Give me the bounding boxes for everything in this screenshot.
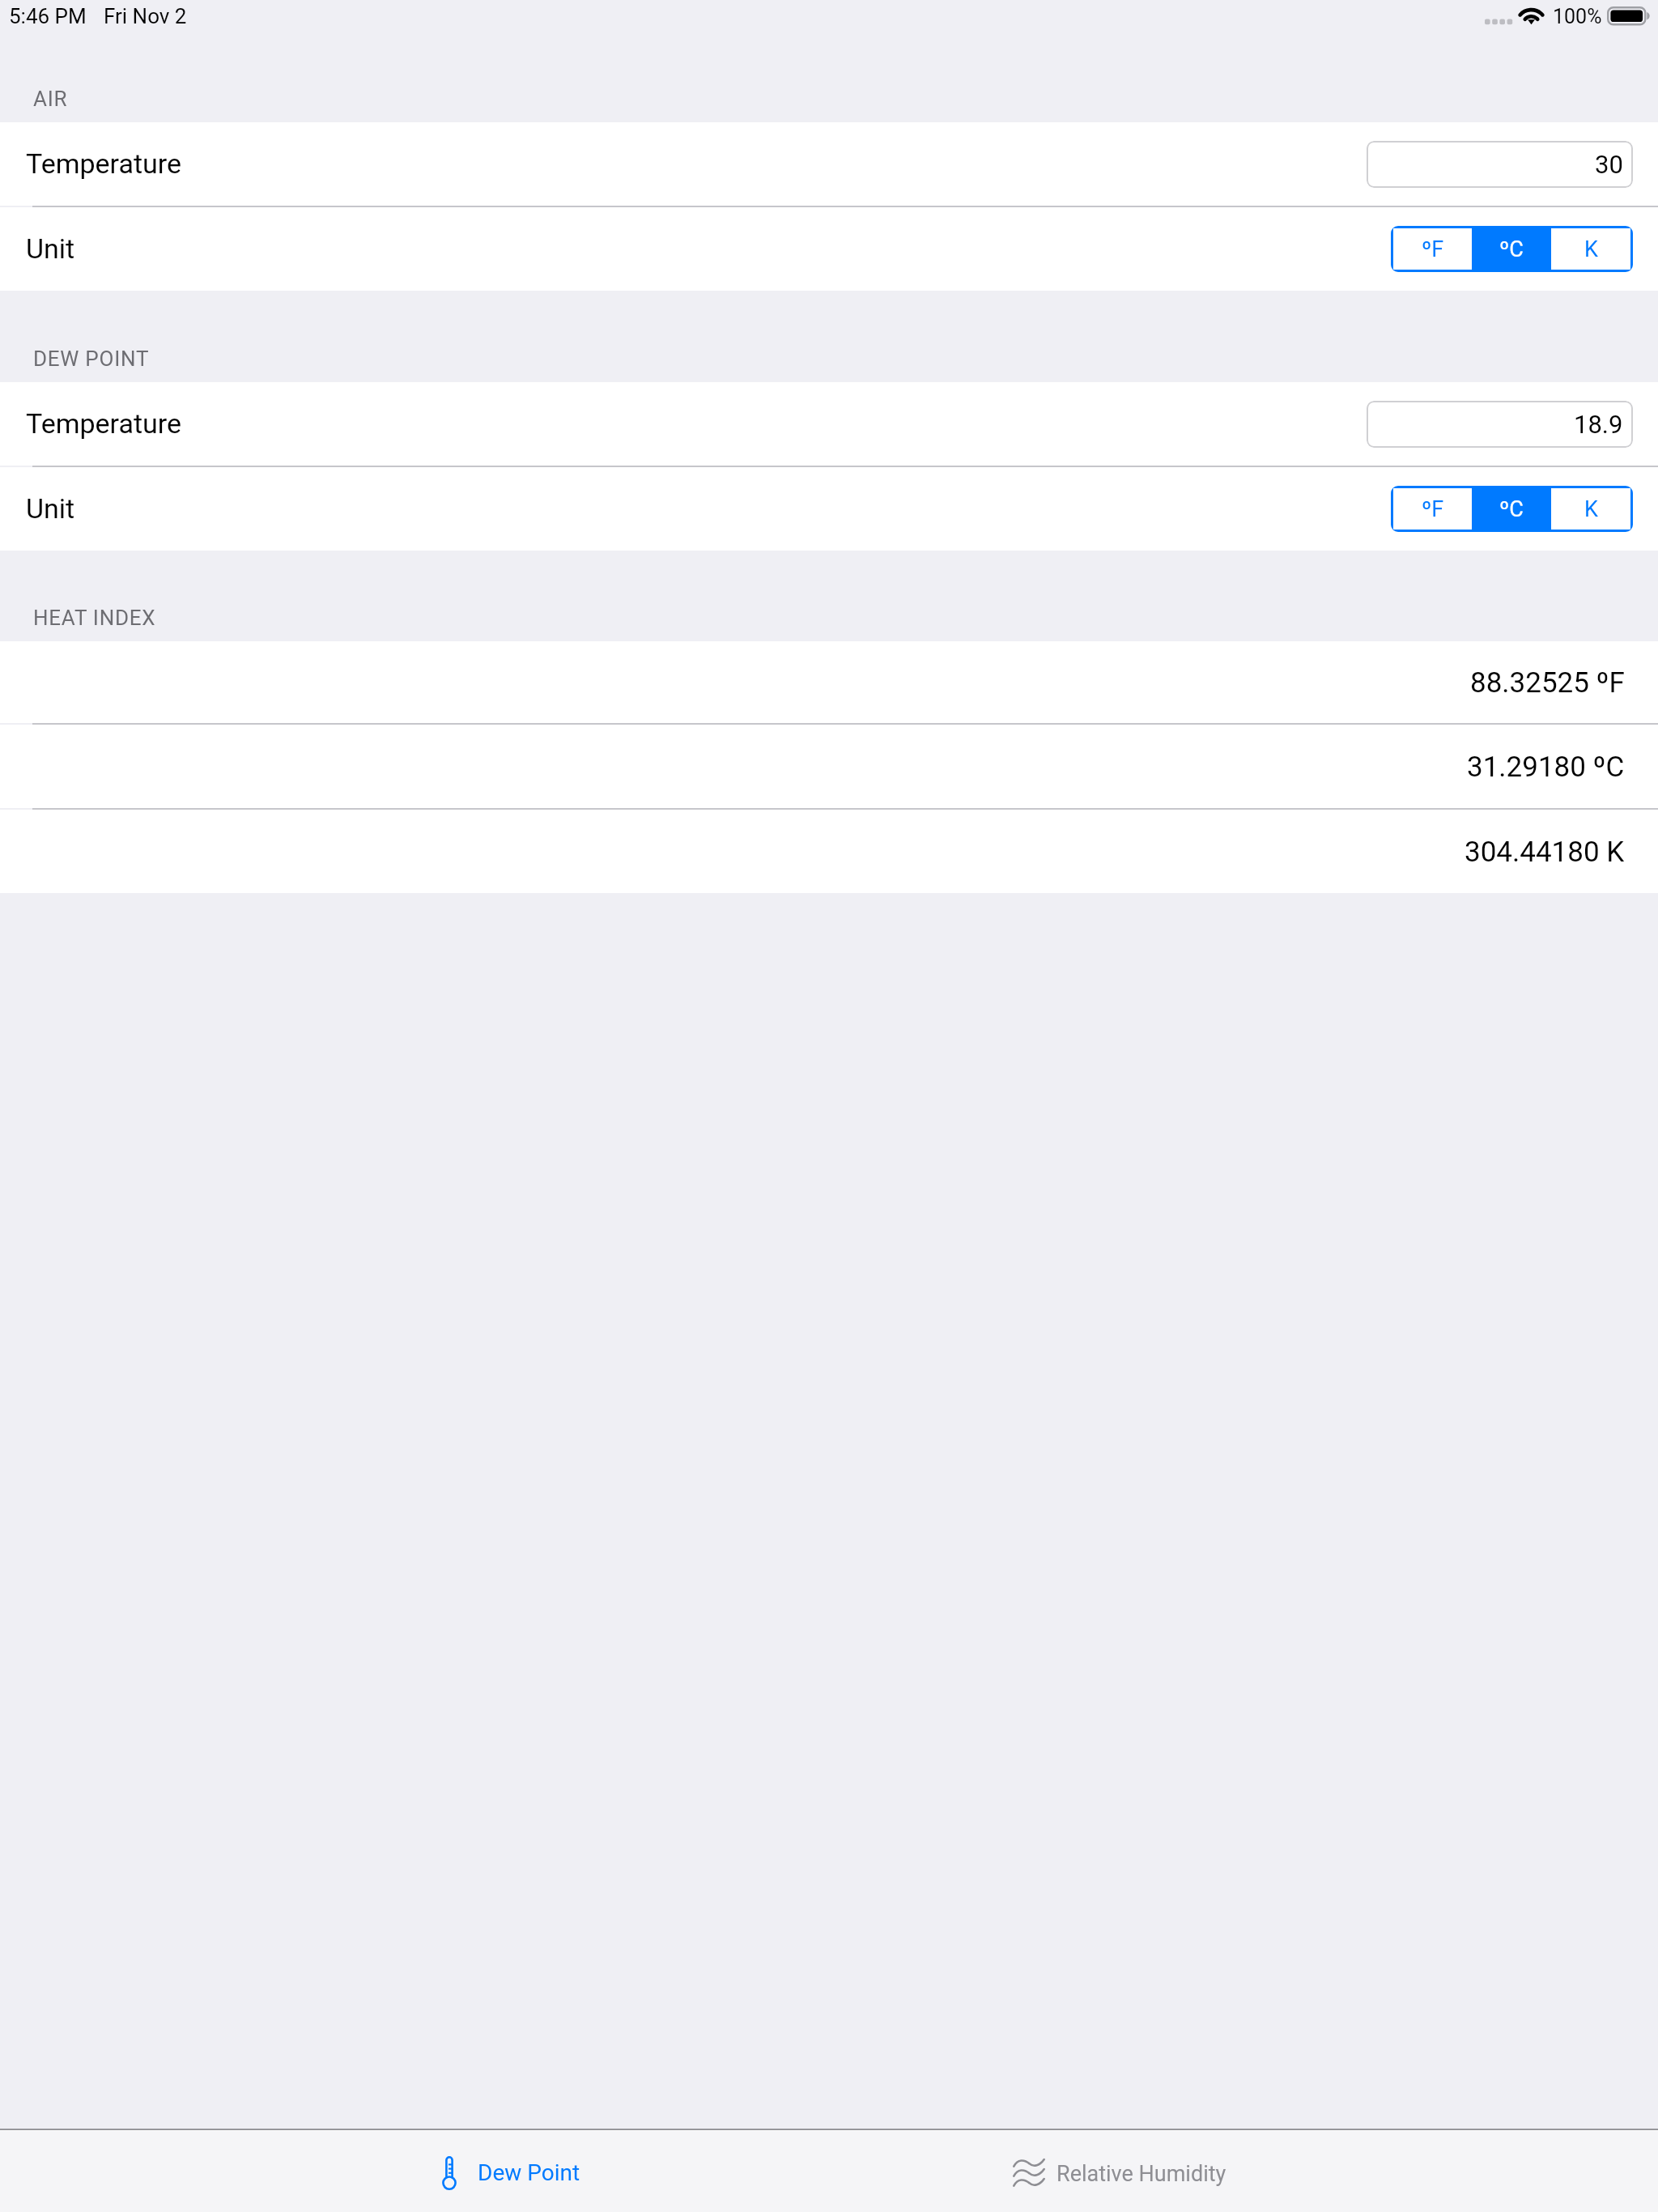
staticText: Temperature [26, 407, 182, 440]
staticText: 100% [1553, 5, 1602, 28]
staticText: 31.29180 ºC [1467, 751, 1625, 784]
button[interactable]: Dew Point [418, 2138, 602, 2189]
staticText: Fri Nov 2 [104, 4, 187, 28]
staticText: ºC [1499, 236, 1524, 262]
button[interactable]: ºF [1393, 228, 1472, 270]
staticText: 30 [1595, 150, 1623, 179]
staticText: HEAT INDEX [33, 606, 156, 630]
staticText: Unit [26, 232, 75, 265]
staticText: 88.32525 ºF [1470, 666, 1625, 700]
staticText: AIR [33, 87, 68, 111]
staticText: 304.44180 K [1465, 836, 1625, 869]
staticText: ºF [1422, 236, 1444, 262]
button[interactable]: ºC [1472, 488, 1551, 530]
staticText: 5:46 PM [9, 4, 87, 28]
staticText: Unit [26, 492, 75, 525]
staticText: K [1584, 496, 1598, 522]
button[interactable]: K [1551, 228, 1630, 270]
staticText: Relative Humidity [1056, 2161, 1226, 2187]
button[interactable]: Relative Humidity [988, 2138, 1250, 2189]
button[interactable]: 30 [1367, 141, 1633, 188]
button[interactable]: ºF [1393, 488, 1472, 530]
other: Battery full [1607, 0, 1652, 28]
staticText: DEW POINT [33, 347, 150, 371]
staticText: ºC [1499, 496, 1524, 522]
staticText: 18.9 [1574, 410, 1623, 439]
staticText: Dew Point [478, 2159, 580, 2186]
other: Cellular signal [1485, 0, 1512, 28]
button[interactable]: ºC [1472, 228, 1551, 270]
button[interactable]: K [1551, 488, 1630, 530]
other: Wi-Fi [1520, 0, 1544, 28]
staticText: K [1584, 236, 1598, 262]
button[interactable]: 18.9 [1367, 401, 1633, 448]
staticText: ºF [1422, 496, 1444, 522]
staticText: Temperature [26, 147, 182, 180]
